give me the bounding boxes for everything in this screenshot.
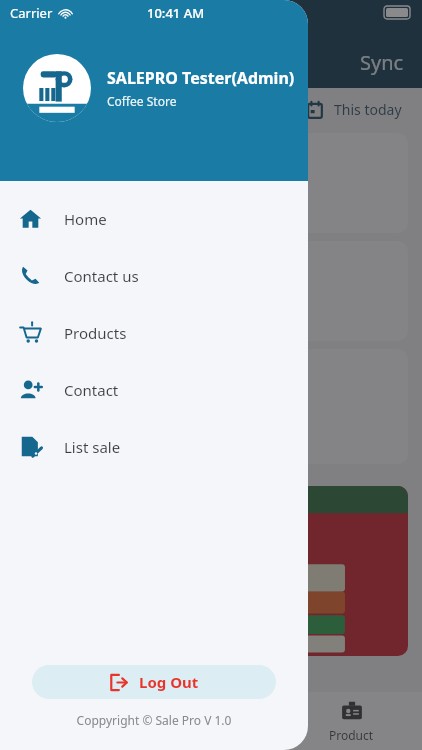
staticText: 0៛ — [176, 156, 200, 185]
staticText: Carrier — [10, 4, 53, 22]
button[interactable]: Sale — [140, 692, 281, 750]
staticText: This today — [334, 100, 402, 119]
staticText: List sale — [64, 437, 121, 457]
staticText: Contact — [64, 380, 119, 400]
staticText: Coffee Store — [107, 93, 177, 109]
staticText: Log Out — [139, 672, 199, 692]
staticText: SALEPRO Tester(Admin) — [107, 67, 295, 89]
button[interactable]: Contact — [0, 361, 308, 418]
button[interactable]: Products — [0, 304, 308, 361]
button[interactable]: List sale — [0, 418, 308, 475]
staticText: Contact us — [64, 266, 139, 286]
staticText: 10:41 AM — [147, 4, 205, 22]
button[interactable]: Home — [0, 190, 308, 247]
button[interactable]: Home — [0, 692, 140, 750]
staticText: Coppyright © Sale Pro V 1.0 — [0, 712, 308, 728]
staticText: Home — [64, 209, 107, 229]
staticText: Products — [64, 323, 127, 343]
staticText: Product — [329, 727, 374, 743]
button[interactable]: Product — [281, 692, 422, 750]
button[interactable]: Contact us — [0, 247, 308, 304]
button[interactable]: Log Out — [32, 665, 276, 699]
staticText: Sync — [360, 49, 404, 76]
